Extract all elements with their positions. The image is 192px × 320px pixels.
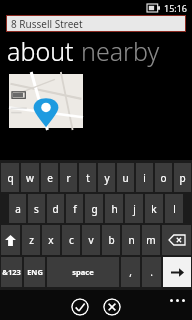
button[interactable]: t (79, 163, 96, 192)
staticText: x (48, 233, 54, 247)
button[interactable]: o (155, 163, 172, 192)
button[interactable]: e (41, 163, 58, 192)
button[interactable]: l (165, 194, 183, 223)
button[interactable]: space (47, 257, 119, 287)
button[interactable]: g (85, 194, 103, 223)
button[interactable] (9, 74, 83, 128)
staticText: c (69, 233, 74, 247)
button[interactable]: j (125, 194, 143, 223)
staticText: , (129, 265, 132, 279)
button[interactable]: k (145, 194, 163, 223)
button[interactable]: s (28, 194, 45, 223)
button[interactable]: m (142, 225, 160, 255)
staticText: u (122, 171, 129, 185)
button[interactable]: nearby (81, 34, 160, 68)
button[interactable]: Shift (1, 225, 20, 255)
button[interactable]: . (142, 257, 161, 287)
staticText: r (66, 171, 71, 185)
button[interactable]: about (7, 34, 74, 68)
button[interactable]: b (102, 225, 120, 255)
staticText: k (151, 202, 157, 216)
staticText: n (128, 233, 135, 247)
staticText: &123 (2, 267, 21, 277)
staticText: h (111, 202, 118, 216)
staticText: g (91, 202, 98, 216)
staticText: e (47, 171, 53, 185)
button[interactable]: q (1, 163, 19, 192)
staticText: b (108, 233, 115, 247)
button[interactable]: h (105, 194, 123, 223)
staticText: p (179, 171, 186, 185)
button[interactable]: u (117, 163, 134, 192)
staticText: v (88, 233, 94, 247)
staticText: ENG (27, 267, 43, 277)
staticText: q (7, 171, 14, 185)
button[interactable]: f (66, 194, 83, 223)
button[interactable]: &123 (1, 257, 22, 287)
staticText: o (160, 171, 167, 185)
staticText: j (133, 202, 136, 216)
staticText: space (72, 267, 94, 277)
staticText: i (143, 171, 146, 185)
staticText: y (104, 171, 110, 185)
button[interactable]: w (21, 163, 39, 192)
staticText: nearby (81, 34, 160, 68)
button[interactable]: Cancel (103, 298, 121, 316)
button[interactable]: Enter (163, 257, 191, 287)
button[interactable]: p (174, 163, 191, 192)
button[interactable]: c (62, 225, 80, 255)
staticText: z (29, 233, 34, 247)
button[interactable]: More options (170, 299, 185, 302)
button[interactable]: v (82, 225, 100, 255)
staticText: f (73, 202, 77, 216)
staticText: t (86, 171, 90, 185)
staticText: l (173, 202, 176, 216)
staticText: 15:16 (164, 2, 188, 14)
button[interactable]: n (122, 225, 140, 255)
staticText: 8 Russell Street (11, 17, 83, 31)
button[interactable]: a (9, 194, 26, 223)
button[interactable]: x (42, 225, 60, 255)
button[interactable]: Backspace (162, 225, 191, 255)
button[interactable]: Accept (71, 298, 89, 316)
staticText: . (150, 265, 153, 279)
staticText: s (34, 202, 39, 216)
button[interactable]: , (121, 257, 140, 287)
button[interactable]: ENG (24, 257, 45, 287)
staticText: about (7, 34, 74, 68)
staticText: m (146, 233, 156, 247)
button[interactable]: 8 Russell Street (6, 15, 186, 32)
button[interactable]: d (47, 194, 64, 223)
button[interactable]: r (60, 163, 77, 192)
staticText: d (52, 202, 59, 216)
button[interactable]: y (98, 163, 115, 192)
staticText: a (15, 202, 21, 216)
button[interactable]: z (22, 225, 40, 255)
button[interactable]: i (136, 163, 153, 192)
staticText: w (26, 171, 34, 185)
